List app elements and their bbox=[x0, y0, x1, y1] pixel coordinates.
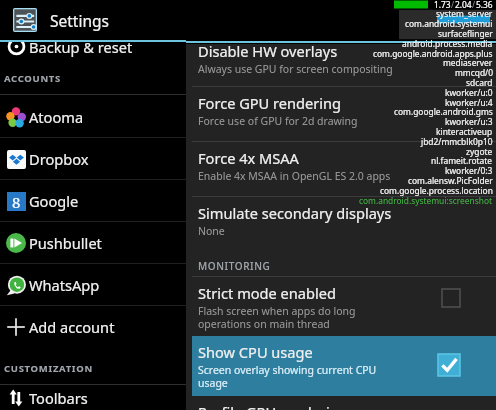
staticText: system_server bbox=[436, 8, 493, 19]
staticText: jbd2/mmcblk0p10 bbox=[421, 136, 493, 147]
button[interactable]: Profile GPU rendering bbox=[186, 396, 496, 410]
staticText: / bbox=[451, 0, 455, 10]
staticText: 8 bbox=[12, 192, 21, 211]
staticText: com.android.systemui bbox=[405, 18, 493, 29]
staticText: com.google.process.location bbox=[380, 185, 493, 196]
staticText: / bbox=[472, 0, 476, 10]
button[interactable]: Atooma bbox=[0, 95, 186, 138]
button[interactable]: Pushbullet bbox=[0, 222, 186, 264]
staticText: kworker/u:3 bbox=[445, 116, 493, 127]
button[interactable]: Simulate secondary displays bbox=[186, 197, 496, 251]
button[interactable]: Toggle setting bbox=[442, 289, 460, 307]
staticText: Atooma bbox=[29, 107, 84, 127]
staticText: Force GPU rendering bbox=[198, 93, 342, 113]
staticText: com.android.systemui:screenshot bbox=[359, 195, 493, 206]
button[interactable]: Add account bbox=[0, 306, 186, 348]
staticText: kinteractiveup bbox=[436, 126, 493, 137]
button[interactable]: Toolbars bbox=[0, 385, 186, 410]
staticText: 2.04 bbox=[455, 0, 472, 10]
staticText: Dropbox bbox=[29, 149, 89, 169]
staticText: Add account bbox=[29, 317, 115, 337]
staticText: mmcqd/0 bbox=[455, 67, 493, 78]
staticText: kworker/u:0 bbox=[445, 87, 493, 98]
staticText: Enable 4x MSAA in OpenGL ES 2.0 apps bbox=[198, 169, 391, 183]
staticText: Force 4x MSAA bbox=[198, 148, 299, 168]
button[interactable]: Backup & reset bbox=[0, 35, 186, 58]
staticText: None bbox=[198, 224, 225, 238]
staticText: zygote bbox=[466, 146, 493, 157]
staticText: WhatsApp bbox=[29, 275, 100, 295]
button[interactable]: Disable HW overlays bbox=[186, 44, 496, 86]
staticText: nl.fameit.rotate bbox=[431, 155, 493, 166]
staticText: android.process.media bbox=[402, 38, 493, 49]
button[interactable]: Toggle setting bbox=[438, 354, 460, 376]
staticText: sdcard bbox=[466, 77, 493, 88]
staticText: Backup & reset bbox=[29, 37, 133, 57]
button[interactable]: Show CPU usage bbox=[192, 336, 496, 396]
button[interactable]: Dropbox bbox=[0, 138, 186, 180]
staticText: com.alensw.PicFolder bbox=[408, 175, 493, 186]
staticText: Always use GPU for screen compositing bbox=[198, 62, 393, 76]
staticText: Screen overlay showing current CPU usage bbox=[198, 363, 377, 390]
staticText: com.google.android.gms bbox=[394, 106, 493, 117]
staticText: Pushbullet bbox=[29, 233, 102, 253]
button[interactable]: Force 4x MSAA bbox=[186, 142, 496, 196]
staticText: Google bbox=[29, 191, 79, 211]
staticText: CUSTOMIZATION bbox=[4, 362, 93, 375]
staticText: 5.36 bbox=[476, 0, 493, 10]
staticText: 1.73 bbox=[434, 0, 451, 10]
staticText: MONITORING bbox=[198, 259, 271, 273]
staticText: kworker/u:4 bbox=[445, 97, 493, 108]
staticText: com.google.android.apps.plus bbox=[373, 48, 493, 59]
staticText: mediaserver bbox=[443, 57, 493, 68]
staticText: Settings bbox=[50, 10, 109, 31]
staticText: Flash screen when apps do long operation… bbox=[198, 304, 356, 331]
button[interactable]: WhatsApp bbox=[0, 264, 186, 306]
staticText: Show CPU usage bbox=[198, 342, 313, 362]
staticText: Disable HW overlays bbox=[198, 41, 338, 61]
staticText: Profile GPU rendering bbox=[198, 402, 348, 410]
staticText: Toolbars bbox=[29, 388, 88, 408]
staticText: Simulate secondary displays bbox=[198, 203, 392, 223]
button[interactable]: Settings bbox=[0, 0, 186, 40]
staticText: Strict mode enabled bbox=[198, 283, 336, 303]
button[interactable]: Strict mode enabled bbox=[186, 277, 496, 336]
button[interactable]: Force GPU rendering bbox=[186, 87, 496, 141]
staticText: Force use of GPU for 2d drawing bbox=[198, 114, 358, 128]
staticText: surfaceflinger bbox=[438, 28, 493, 39]
staticText: kworker/0:3 bbox=[445, 165, 493, 176]
staticText: ACCOUNTS bbox=[4, 72, 61, 85]
button[interactable]: 8 bbox=[0, 180, 186, 222]
